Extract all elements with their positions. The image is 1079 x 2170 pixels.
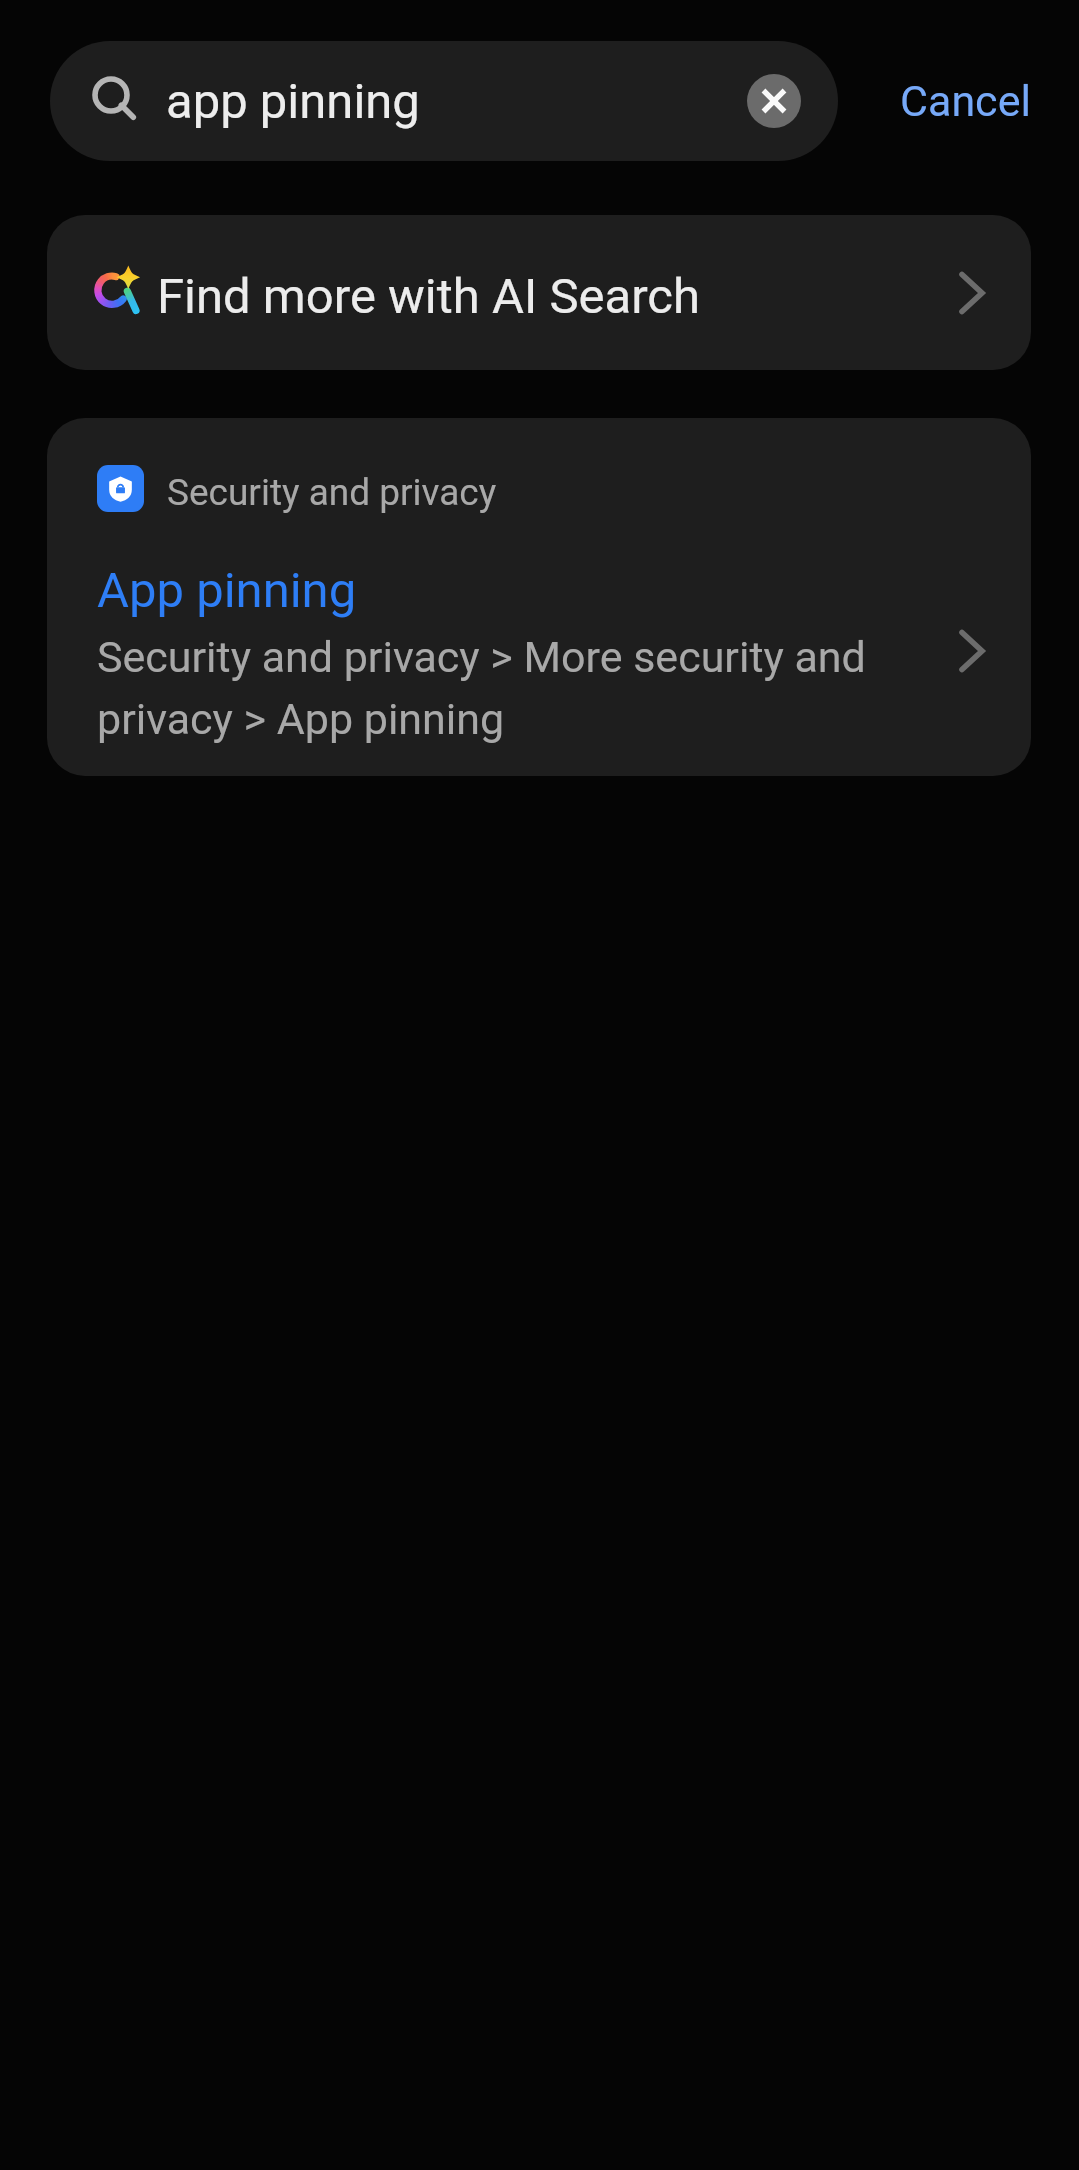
- staticText: app pinning: [166, 73, 420, 130]
- button[interactable]: Security and privacy: [47, 418, 1031, 776]
- staticText: Find more with AI Search: [157, 268, 700, 325]
- staticText: App pinning: [97, 562, 357, 619]
- button[interactable]: Search settings: [50, 41, 838, 161]
- staticText: Cancel: [900, 76, 1031, 126]
- staticText: Security and privacy > More security and…: [97, 632, 937, 745]
- button[interactable]: Clear search: [734, 61, 814, 141]
- button[interactable]: Cancel: [886, 66, 1045, 136]
- staticText: Security and privacy: [167, 471, 497, 514]
- button[interactable]: Find more with AI Search: [47, 215, 1031, 370]
